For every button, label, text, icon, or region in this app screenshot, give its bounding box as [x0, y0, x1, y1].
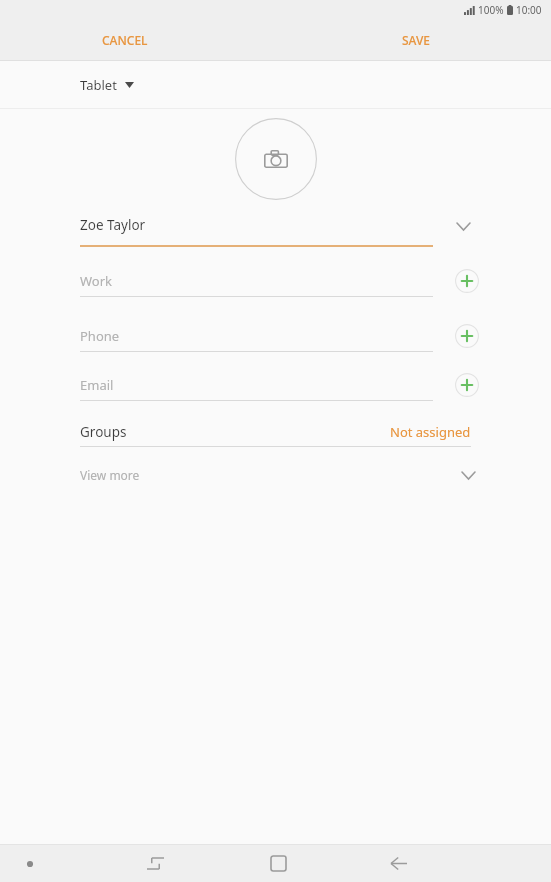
staticText: Groups [80, 423, 127, 441]
staticText: SAVE [402, 32, 431, 48]
staticText: Phone [80, 327, 120, 345]
button[interactable]: Home [256, 845, 300, 882]
staticText: Not assigned [390, 423, 471, 441]
staticText: CANCEL [102, 32, 148, 48]
button[interactable]: Work [80, 269, 433, 297]
staticText: Tablet [80, 76, 117, 94]
button[interactable]: Zoe Taylor [0, 209, 551, 247]
staticText: Zoe Taylor [80, 216, 146, 234]
button[interactable]: Groups [80, 421, 471, 447]
staticText: Work [80, 272, 113, 290]
staticText: 100% [478, 3, 504, 17]
button[interactable]: Expand name [451, 214, 475, 238]
button[interactable]: Add Work [455, 269, 479, 293]
button[interactable]: Back [377, 845, 421, 882]
staticText: 10:00 [516, 3, 542, 17]
button[interactable]: Tablet [0, 61, 551, 108]
button[interactable]: CANCEL [94, 26, 156, 54]
button[interactable]: Add Email [455, 373, 479, 397]
button[interactable]: SAVE [394, 26, 439, 54]
staticText: Email [80, 376, 114, 394]
staticText: View more [80, 467, 140, 483]
button[interactable]: Recents [133, 845, 177, 882]
button[interactable]: Phone [80, 324, 433, 352]
button[interactable]: Add Phone [455, 324, 479, 348]
button[interactable]: View more [0, 462, 551, 488]
button[interactable]: Email [80, 373, 433, 401]
button[interactable]: Add contact photo [235, 118, 317, 200]
